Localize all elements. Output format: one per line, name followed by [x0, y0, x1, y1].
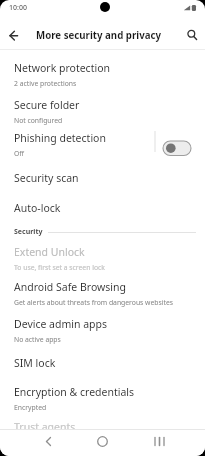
button[interactable]: [162, 139, 194, 158]
button[interactable]: [183, 27, 200, 44]
button[interactable]: Network protection: [0, 55, 205, 91]
button[interactable]: Encryption & credentials: [0, 379, 205, 415]
button[interactable]: [91, 432, 115, 456]
button[interactable]: SIM lock: [0, 350, 205, 380]
button[interactable]: [5, 27, 22, 44]
staticText: Device admin apps: [14, 317, 108, 331]
staticText: Off: [14, 149, 24, 158]
button[interactable]: [36, 432, 60, 456]
button[interactable]: [148, 432, 172, 456]
button[interactable]: Security scan: [0, 165, 205, 195]
staticText: Auto-lock: [14, 201, 61, 215]
staticText: Encrypted: [14, 403, 47, 412]
staticText: Encryption & credentials: [14, 385, 135, 399]
button[interactable]: Extend Unlock: [0, 239, 205, 275]
staticText: Extend Unlock: [14, 245, 85, 259]
button[interactable]: Auto-lock: [0, 195, 205, 225]
staticText: More security and privacy: [36, 29, 162, 42]
button[interactable]: Secure folder: [0, 92, 205, 128]
button[interactable]: Phishing detection: [0, 125, 205, 161]
button[interactable]: Android Safe Browsing: [0, 274, 205, 310]
button[interactable]: Device admin apps: [0, 311, 205, 347]
staticText: 2 active protections: [14, 79, 77, 88]
staticText: 10:00: [9, 3, 27, 13]
staticText: Android Safe Browsing: [14, 280, 126, 294]
staticText: SIM lock: [14, 356, 56, 370]
staticText: Not configured: [14, 116, 63, 125]
staticText: Trust agents: [14, 420, 76, 434]
staticText: Security: [14, 227, 43, 237]
staticText: To use, first set a screen lock: [14, 263, 105, 272]
staticText: No active apps: [14, 335, 61, 344]
staticText: Secure folder: [14, 98, 80, 112]
staticText: Network protection: [14, 61, 111, 75]
staticText: Security scan: [14, 171, 79, 185]
staticText: Get alerts about threats from dangerous …: [14, 298, 174, 307]
staticText: Phishing detection: [14, 131, 106, 145]
